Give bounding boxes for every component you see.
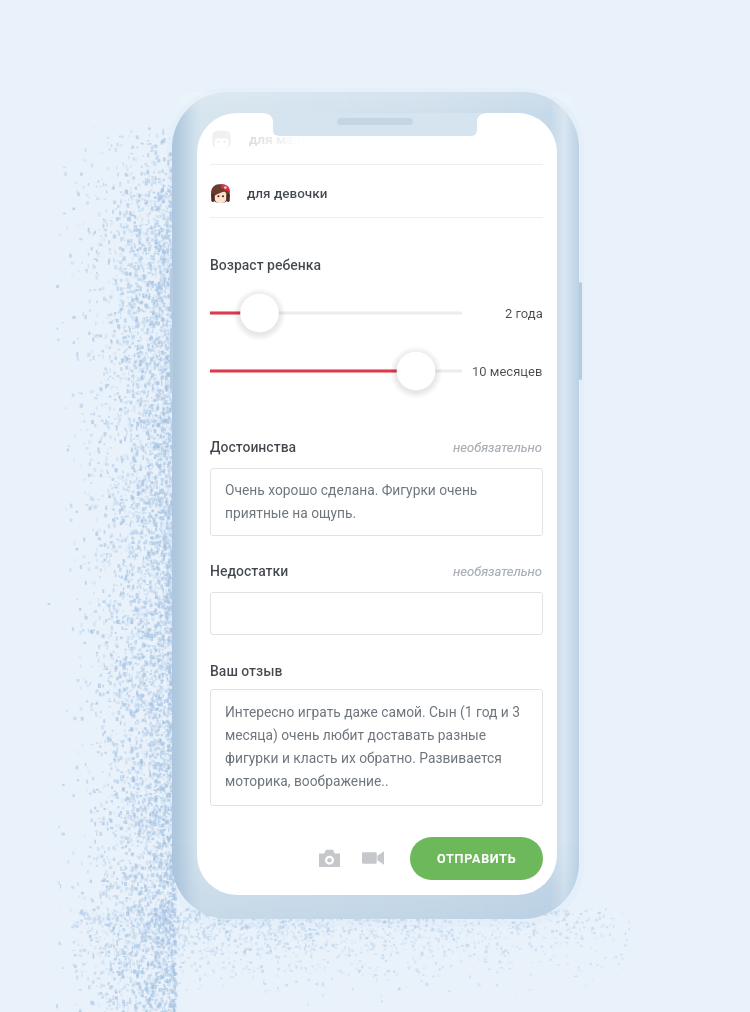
staticText: Ваш отзыв — [210, 663, 283, 679]
staticText: 2 года — [505, 306, 543, 321]
button[interactable]: для девочки — [210, 174, 543, 212]
staticText: 10 месяцев — [472, 364, 543, 379]
button[interactable]: ОТПРАВИТЬ — [410, 837, 543, 880]
staticText: необязательно — [453, 564, 543, 579]
button[interactable]: Интересно играть даже самой. Сын (1 год … — [210, 689, 543, 806]
staticText: для мальчика — [249, 131, 339, 147]
button[interactable]: Добавить фото — [312, 841, 346, 875]
button[interactable]: Добавить видео — [356, 841, 390, 875]
staticText: Достоинства — [210, 439, 297, 455]
staticText: Недостатки — [210, 563, 289, 579]
staticText: ОТПРАВИТЬ — [437, 851, 517, 866]
button[interactable]: Очень хорошо сделана. Фигурки очень прия… — [210, 468, 543, 536]
staticText: Очень хорошо сделана. Фигурки очень прия… — [225, 482, 478, 521]
staticText: необязательно — [453, 440, 543, 455]
staticText: для девочки — [247, 185, 328, 201]
staticText: Возраст ребенка — [210, 257, 322, 273]
button[interactable] — [210, 592, 543, 635]
staticText: Интересно играть даже самой. Сын (1 год … — [225, 704, 520, 789]
